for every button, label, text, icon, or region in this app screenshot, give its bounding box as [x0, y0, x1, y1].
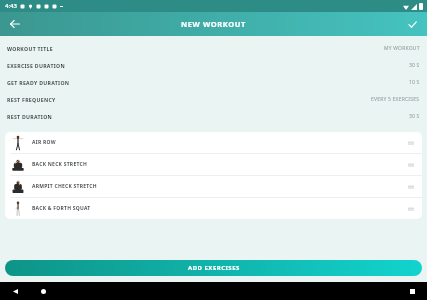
staticText: BACK NECK STRETCH: [32, 161, 88, 168]
button[interactable]: WORKOUT TITLE: [0, 40, 427, 57]
staticText: WORKOUT TITLE: [7, 45, 53, 52]
staticText: BACK & FORTH SQUAT: [32, 205, 91, 212]
button[interactable]: Reorder BACK & FORTH SQUAT: [405, 202, 417, 216]
button[interactable]: ADD EXERCISES: [5, 260, 422, 276]
button[interactable]: Back: [6, 15, 24, 33]
button[interactable]: Reorder BACK NECK STRETCH: [405, 158, 417, 172]
staticText: GET READY DURATION: [7, 79, 70, 86]
button[interactable]: ARMPIT CHECK STRETCH: [5, 176, 422, 197]
button[interactable]: Reorder AIR ROW: [405, 136, 417, 150]
button[interactable]: BACK NECK STRETCH: [5, 154, 422, 175]
staticText: EVERY 5 EXERCISES: [371, 96, 420, 103]
button[interactable]: REST FREQUENCY: [0, 91, 427, 108]
staticText: REST DURATION: [7, 113, 53, 120]
staticText: 30 S: [409, 113, 420, 120]
button[interactable]: REST DURATION: [0, 108, 427, 125]
staticText: ARMPIT CHECK STRETCH: [32, 183, 97, 190]
button[interactable]: GET READY DURATION: [0, 74, 427, 91]
staticText: MY WORKOUT: [384, 45, 420, 52]
button[interactable]: Reorder ARMPIT CHECK STRETCH: [405, 180, 417, 194]
button[interactable]: Recent apps: [405, 284, 419, 298]
button[interactable]: Back: [8, 284, 22, 298]
staticText: NEW WORKOUT: [181, 19, 246, 29]
staticText: 4:43: [5, 2, 17, 10]
staticText: 10 S: [409, 79, 420, 86]
button[interactable]: Home: [36, 284, 50, 298]
button[interactable]: AIR ROW: [5, 132, 422, 153]
staticText: 30 S: [409, 62, 420, 69]
staticText: REST FREQUENCY: [7, 96, 56, 103]
button[interactable]: EXERCISE DURATION: [0, 57, 427, 74]
staticText: AIR ROW: [32, 139, 56, 146]
button[interactable]: Save workout: [403, 15, 421, 33]
staticText: EXERCISE DURATION: [7, 62, 65, 69]
staticText: ADD EXERCISES: [188, 264, 240, 272]
button[interactable]: BACK & FORTH SQUAT: [5, 198, 422, 219]
